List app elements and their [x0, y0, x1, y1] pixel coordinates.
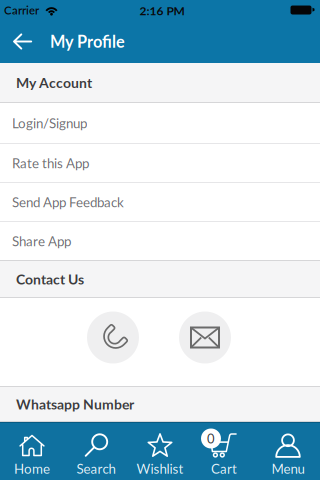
- button[interactable]: Back: [0, 20, 50, 63]
- button[interactable]: Rate this App: [0, 144, 320, 183]
- staticText: Menu: [271, 460, 304, 476]
- button[interactable]: Home: [0, 423, 64, 480]
- staticText: Whatsapp Number: [16, 396, 134, 412]
- button[interactable]: Call: [87, 311, 139, 363]
- staticText: Share App: [12, 233, 71, 249]
- staticText: Login/Signup: [12, 115, 87, 131]
- button[interactable]: Menu: [256, 423, 320, 480]
- staticText: My Profile: [50, 32, 125, 51]
- button[interactable]: Send App Feedback: [0, 183, 320, 222]
- staticText: Send App Feedback: [12, 194, 124, 210]
- button[interactable]: Share App: [0, 222, 320, 260]
- button[interactable]: Search: [64, 423, 128, 480]
- button[interactable]: Wishlist: [128, 423, 192, 480]
- staticText: Contact Us: [16, 271, 84, 287]
- staticText: 2:16 PM: [139, 3, 184, 18]
- button[interactable]: 0: [192, 423, 256, 480]
- staticText: 0: [207, 431, 215, 446]
- staticText: Rate this App: [12, 155, 89, 171]
- staticText: Search: [76, 460, 115, 476]
- staticText: Carrier: [4, 3, 39, 17]
- staticText: Home: [14, 460, 50, 476]
- staticText: Cart: [211, 460, 237, 476]
- button[interactable]: Email: [179, 311, 231, 363]
- staticText: Wishlist: [136, 460, 183, 476]
- button[interactable]: Login/Signup: [0, 103, 320, 144]
- staticText: My Account: [16, 74, 92, 91]
